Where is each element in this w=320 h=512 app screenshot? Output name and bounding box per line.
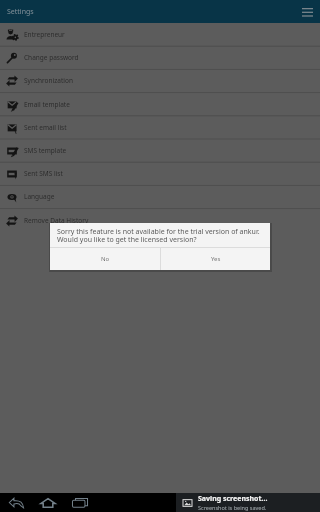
staticText: Language (24, 192, 55, 201)
button[interactable]: Entrepreneur (0, 23, 320, 46)
staticText: Screenshot is being saved. (198, 504, 267, 511)
button[interactable]: Saving screenshot… (176, 493, 320, 512)
button[interactable]: Sent email list (0, 116, 320, 139)
button[interactable]: Home (32, 493, 64, 512)
staticText: Synchronization (24, 76, 73, 85)
staticText: Yes (211, 255, 221, 263)
button[interactable]: Change password (0, 46, 320, 69)
staticText: SMS template (24, 146, 67, 155)
staticText: Sorry this feature is not available for … (57, 227, 260, 244)
staticText: No (101, 255, 110, 263)
button[interactable]: Menu (297, 2, 317, 22)
button[interactable]: Yes (161, 248, 270, 270)
button[interactable]: Back (0, 493, 32, 512)
button[interactable]: Synchronization (0, 69, 320, 92)
button[interactable]: Remove Data History (0, 209, 320, 232)
button[interactable]: Recent apps (64, 493, 96, 512)
staticText: Email template (24, 100, 70, 109)
staticText: Entrepreneur (24, 30, 65, 39)
staticText: Settings (7, 7, 34, 17)
staticText: Saving screenshot… (198, 494, 268, 504)
staticText: Remove Data History (24, 216, 89, 225)
staticText: Sent email list (24, 123, 67, 132)
button[interactable]: Sent SMS list (0, 162, 320, 185)
button[interactable]: Email template (0, 93, 320, 116)
button[interactable]: No (50, 248, 160, 270)
staticText: Change password (24, 53, 79, 62)
staticText: Sent SMS list (24, 169, 63, 178)
button[interactable]: SMS template (0, 139, 320, 162)
button[interactable]: Language (0, 185, 320, 208)
